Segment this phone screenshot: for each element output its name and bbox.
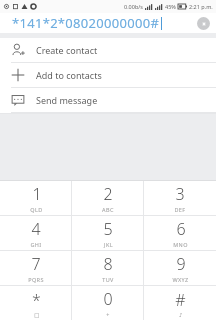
staticText: 1 xyxy=(32,183,42,205)
staticText: 45% xyxy=(165,3,176,10)
staticText: 5 xyxy=(103,218,113,240)
staticText: 2:21 p.m. xyxy=(189,3,213,10)
staticText: □ xyxy=(34,312,40,318)
button[interactable]: 2 xyxy=(72,181,144,215)
button[interactable]: Add to contacts xyxy=(0,63,216,87)
staticText: ABC xyxy=(102,206,114,213)
staticText: 0 xyxy=(103,288,113,310)
staticText: 4 xyxy=(31,218,41,240)
staticText: Create contact xyxy=(36,44,98,56)
button[interactable]: Send message xyxy=(0,88,216,112)
button[interactable]: 6 xyxy=(144,216,216,250)
staticText: GHI xyxy=(30,241,42,248)
staticText: 3 xyxy=(175,183,185,205)
staticText: TUV xyxy=(102,276,114,283)
staticText: ♪ xyxy=(179,312,183,318)
staticText: QLD xyxy=(30,206,43,213)
staticText: DEF xyxy=(174,206,186,213)
button[interactable]: 9 xyxy=(144,251,216,285)
staticText: # xyxy=(175,289,186,311)
staticText: 6 xyxy=(176,218,186,240)
staticText: Add to contacts xyxy=(36,69,102,81)
staticText: *141*2*08020000000# xyxy=(12,14,160,32)
staticText: * xyxy=(32,289,41,311)
staticText: JKL xyxy=(104,241,113,248)
button[interactable]: 0 xyxy=(72,286,144,320)
staticText: 8 xyxy=(103,253,113,275)
button[interactable]: * xyxy=(0,286,72,320)
button[interactable]: Create contact xyxy=(0,38,216,62)
button[interactable]: # xyxy=(144,286,216,320)
staticText: 0.00b/s xyxy=(124,3,143,10)
button[interactable]: 8 xyxy=(72,251,144,285)
staticText: MNO xyxy=(173,241,188,248)
staticText: WXYZ xyxy=(172,276,189,283)
button[interactable]: 3 xyxy=(144,181,216,215)
button[interactable]: 1 xyxy=(0,181,72,215)
button[interactable]: Clear xyxy=(197,17,210,30)
staticText: 7 xyxy=(31,253,41,275)
staticText: 2 xyxy=(103,183,113,205)
staticText: + xyxy=(106,311,110,318)
staticText: Send message xyxy=(36,94,98,106)
staticText: PQRS xyxy=(28,276,44,283)
button[interactable]: 7 xyxy=(0,251,72,285)
button[interactable]: 5 xyxy=(72,216,144,250)
button[interactable]: 4 xyxy=(0,216,72,250)
staticText: 9 xyxy=(176,253,186,275)
